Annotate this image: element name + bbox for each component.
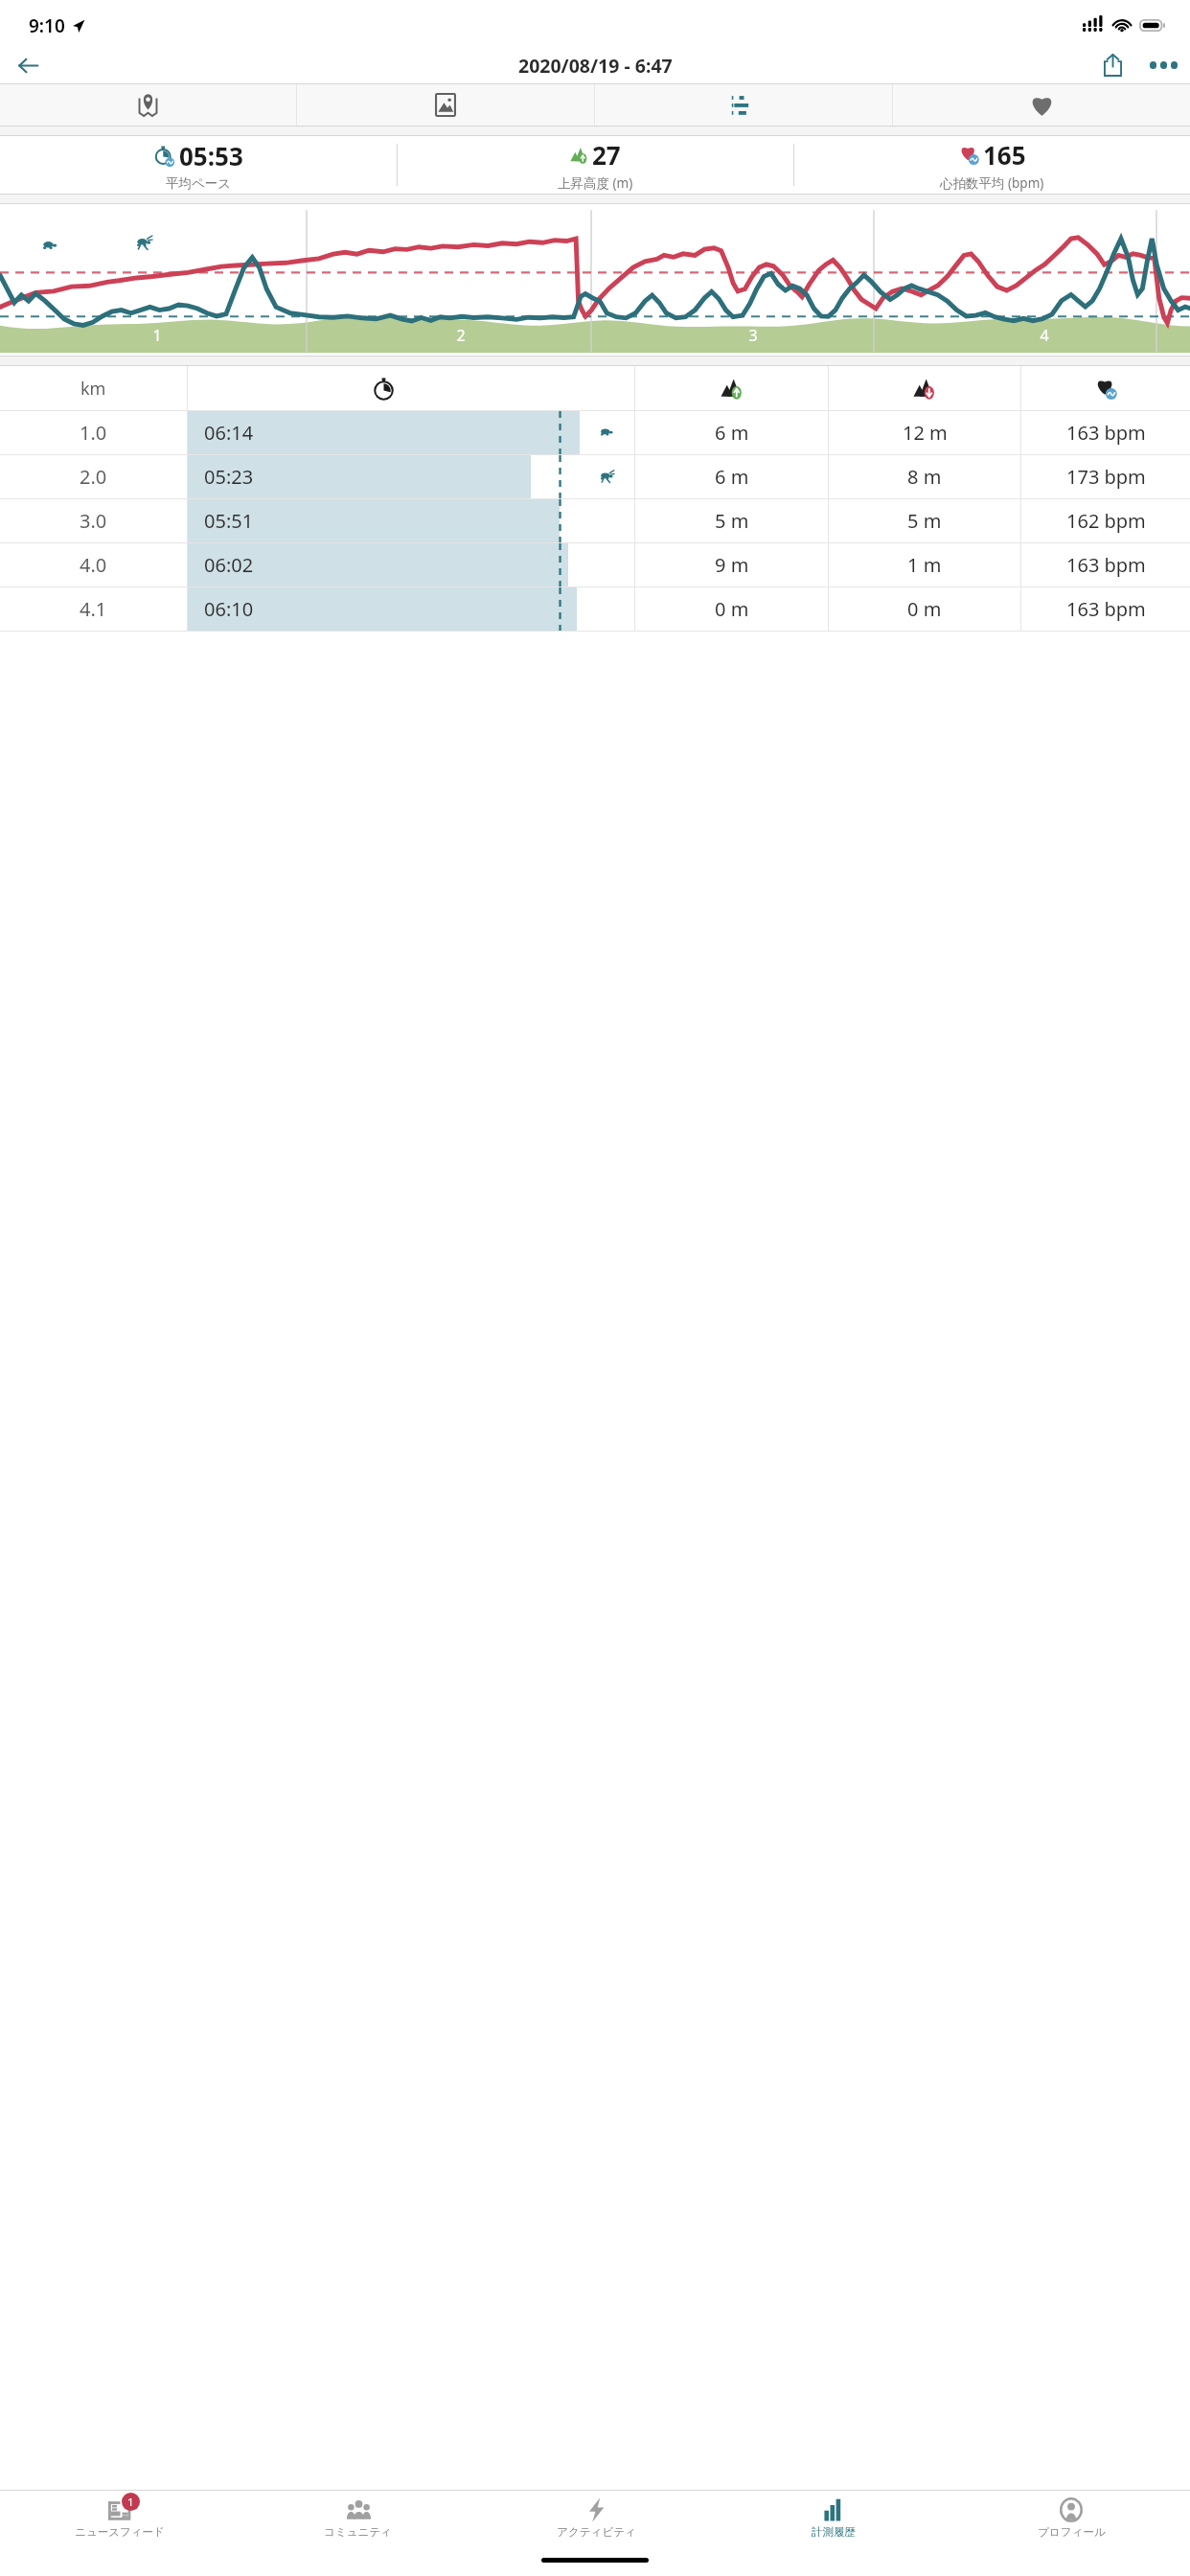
staticText: 心拍数平均 (bpm) bbox=[940, 174, 1044, 192]
staticText: 9:10 bbox=[29, 13, 65, 38]
staticText: 163 bpm bbox=[1066, 420, 1146, 446]
button[interactable]: 4.0 bbox=[0, 543, 1190, 586]
staticText: 1 m bbox=[907, 552, 942, 578]
staticText: 6 m bbox=[715, 420, 749, 446]
button[interactable]: Back bbox=[0, 47, 56, 83]
staticText: 4.0 bbox=[80, 552, 107, 578]
staticText: 1 bbox=[152, 325, 162, 346]
button[interactable]: More options bbox=[1136, 47, 1190, 83]
staticText: 5 m bbox=[715, 508, 749, 534]
staticText: 2.0 bbox=[80, 464, 107, 490]
staticText: 163 bpm bbox=[1066, 552, 1146, 578]
button[interactable]: 2.0 bbox=[0, 455, 1190, 498]
staticText: 5 m bbox=[907, 508, 942, 534]
staticText: アクティビティ bbox=[557, 2525, 636, 2539]
button[interactable]: 3.0 bbox=[0, 499, 1190, 542]
staticText: 05:23 bbox=[204, 464, 254, 490]
staticText: 上昇高度 (m) bbox=[558, 174, 633, 192]
staticText: 2 bbox=[456, 325, 466, 346]
staticText: 12 m bbox=[903, 420, 948, 446]
staticText: 27 bbox=[592, 138, 621, 172]
staticText: 0 m bbox=[715, 596, 749, 622]
staticText: 05:53 bbox=[179, 139, 243, 172]
staticText: 0 m bbox=[907, 596, 942, 622]
staticText: 1 bbox=[127, 2495, 134, 2510]
staticText: プロフィール bbox=[1038, 2525, 1106, 2539]
staticText: 8 m bbox=[907, 464, 942, 490]
button[interactable]: Heart rate bbox=[893, 84, 1190, 126]
button[interactable]: アクティビティ bbox=[477, 2491, 715, 2550]
button[interactable]: 計測履歴 bbox=[715, 2491, 952, 2550]
staticText: コミュニティ bbox=[324, 2525, 392, 2539]
button[interactable]: 1.0 bbox=[0, 411, 1190, 454]
button[interactable]: 1 bbox=[0, 2491, 239, 2550]
button[interactable]: Map bbox=[0, 84, 296, 126]
staticText: 165 bbox=[983, 138, 1026, 172]
button[interactable]: 27 bbox=[398, 138, 793, 192]
staticText: 4.1 bbox=[80, 596, 107, 622]
staticText: 173 bpm bbox=[1066, 464, 1146, 490]
button[interactable]: Share bbox=[1088, 47, 1136, 83]
staticText: km bbox=[80, 377, 106, 401]
button[interactable]: Photos bbox=[297, 84, 594, 126]
staticText: 163 bpm bbox=[1066, 596, 1146, 622]
staticText: 9 m bbox=[715, 552, 749, 578]
button[interactable]: Charts bbox=[595, 84, 892, 126]
staticText: 06:10 bbox=[204, 596, 254, 622]
staticText: 1.0 bbox=[80, 420, 107, 446]
staticText: ニュースフィード bbox=[75, 2525, 165, 2539]
button[interactable]: プロフィール bbox=[952, 2491, 1190, 2550]
button[interactable]: 4.1 bbox=[0, 587, 1190, 631]
staticText: 06:14 bbox=[204, 420, 254, 446]
staticText: 162 bpm bbox=[1066, 508, 1146, 534]
staticText: 2020/08/19 - 6:47 bbox=[518, 53, 673, 79]
staticText: 3.0 bbox=[80, 508, 107, 534]
staticText: 05:51 bbox=[204, 508, 254, 534]
staticText: 平均ペース bbox=[166, 175, 232, 192]
staticText: 計測履歴 bbox=[812, 2525, 856, 2539]
staticText: 6 m bbox=[715, 464, 749, 490]
button[interactable]: コミュニティ bbox=[239, 2491, 477, 2550]
staticText: 4 bbox=[1040, 325, 1049, 346]
staticText: 3 bbox=[748, 325, 758, 346]
button[interactable]: 165 bbox=[794, 138, 1190, 192]
button[interactable]: 05:53 bbox=[0, 139, 397, 192]
staticText: 06:02 bbox=[204, 552, 254, 578]
